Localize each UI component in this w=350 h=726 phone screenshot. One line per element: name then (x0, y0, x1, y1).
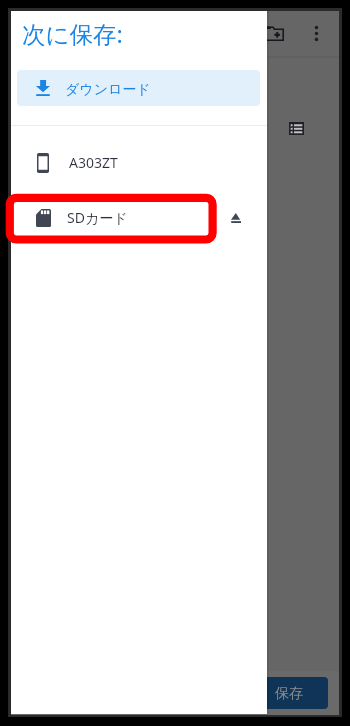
staticText: 次に保存: (22, 18, 123, 50)
button[interactable]: New folder (257, 16, 291, 50)
staticText: 保存 (275, 685, 303, 703)
button[interactable]: SDカード (11, 190, 267, 245)
staticText: A303ZT (69, 153, 118, 172)
button[interactable]: A303ZT (11, 135, 267, 190)
button[interactable]: 保存 (253, 677, 328, 709)
button[interactable]: ダウンロード (17, 70, 260, 106)
staticText: SDカード (67, 208, 128, 227)
button[interactable]: List view (278, 110, 314, 146)
button[interactable]: More options (299, 16, 333, 50)
staticText: ダウンロード (65, 81, 151, 99)
button[interactable]: Eject SD card (216, 198, 256, 238)
